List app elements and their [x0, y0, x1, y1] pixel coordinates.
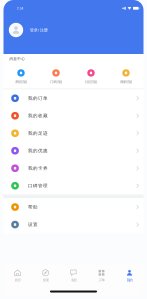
staticText: 首页 — [14, 278, 20, 282]
staticText: 订单消息 — [50, 80, 62, 84]
staticText: 设置 — [28, 222, 38, 227]
button[interactable]: 订单消息 — [38, 69, 73, 84]
staticText: 9:34 — [16, 6, 23, 10]
button[interactable]: 订单 — [87, 269, 115, 282]
button[interactable]: 设置 — [3, 216, 143, 233]
staticText: 我的收藏 — [28, 113, 48, 119]
staticText: 我的足迹 — [28, 130, 48, 136]
staticText: 登录/注册 — [30, 27, 48, 33]
staticText: 我的 — [126, 278, 132, 282]
staticText: 我的订单 — [28, 95, 48, 101]
button[interactable]: 口碑管理 — [3, 177, 143, 194]
button[interactable]: 发现 — [31, 269, 59, 282]
button[interactable]: 我的卡券 — [3, 159, 143, 177]
button[interactable]: 我的优惠 — [3, 142, 143, 159]
button[interactable]: 我的收藏 — [3, 107, 143, 124]
staticText: 我的卡券 — [28, 165, 48, 171]
staticText: 社区消息 — [85, 80, 97, 84]
button[interactable]: 商家消息 — [108, 69, 143, 84]
button[interactable]: 帮助 — [3, 198, 143, 216]
button[interactable]: 我的足迹 — [3, 124, 143, 142]
button[interactable]: 消息 — [59, 269, 87, 282]
button[interactable]: 系统消息 — [3, 69, 38, 84]
staticText: 口碑管理 — [28, 183, 48, 189]
staticText: 系统消息 — [15, 80, 27, 84]
button[interactable]: 我的 — [115, 269, 143, 282]
button[interactable]: 社区消息 — [73, 69, 108, 84]
staticText: 发现 — [42, 278, 48, 282]
staticText: 订单 — [98, 278, 104, 282]
button[interactable]: 我的订单 — [3, 89, 143, 107]
staticText: 消息中心 — [9, 56, 25, 61]
staticText: 我的优惠 — [28, 148, 48, 154]
staticText: 帮助 — [28, 204, 38, 210]
staticText: 商家消息 — [120, 80, 132, 84]
button[interactable]: 首页 — [3, 269, 31, 282]
staticText: 消息 — [70, 278, 76, 282]
